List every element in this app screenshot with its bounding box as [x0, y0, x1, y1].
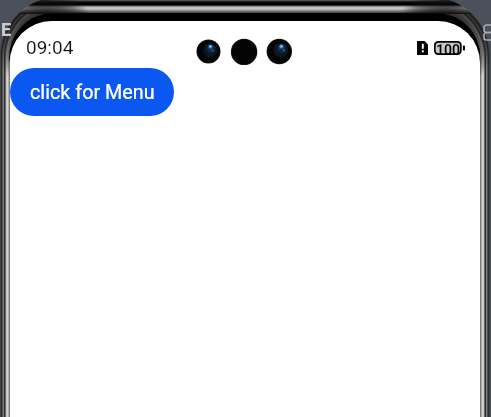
button[interactable]: click for Menu: [10, 68, 174, 116]
other: Battery 100 percent: [434, 41, 465, 55]
staticText: E: [1, 19, 12, 40]
staticText: 100: [434, 42, 462, 58]
staticText: 09:04: [26, 36, 74, 58]
staticText: click for Menu: [30, 81, 155, 104]
other: No SIM card: [417, 41, 428, 55]
